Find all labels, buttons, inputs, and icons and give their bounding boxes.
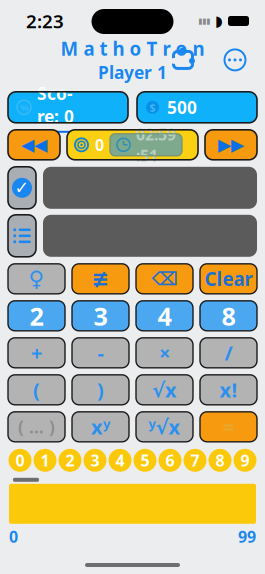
- button[interactable]: 7: [183, 449, 206, 472]
- button[interactable]: ( … ): [8, 412, 65, 442]
- staticText: -: [97, 339, 103, 366]
- staticText: Score: 0: [37, 82, 74, 128]
- button[interactable]: Previous: [8, 130, 60, 160]
- staticText: 2: [65, 450, 74, 471]
- staticText: 500: [167, 96, 197, 119]
- button[interactable]: xʸ: [72, 412, 129, 442]
- staticText: xʸ: [91, 413, 110, 440]
- button[interactable]: 6: [158, 449, 181, 472]
- staticText: ×: [159, 339, 170, 366]
- staticText: 2: [29, 299, 43, 333]
- staticText: x!: [219, 376, 237, 403]
- button[interactable]: History: [8, 215, 36, 257]
- button[interactable]: 2: [8, 301, 65, 331]
- staticText: ): [97, 376, 104, 403]
- button[interactable]: x!: [200, 375, 257, 405]
- staticText: 5: [140, 450, 149, 471]
- staticText: 99: [238, 526, 256, 547]
- button[interactable]: (: [8, 375, 65, 405]
- staticText: √x: [152, 376, 177, 403]
- button[interactable]: Puzzle: [171, 48, 195, 72]
- button[interactable]: -: [72, 338, 129, 368]
- staticText: %: [20, 101, 28, 113]
- staticText: ▶▶: [218, 135, 244, 155]
- button[interactable]: √x: [136, 375, 193, 405]
- staticText: ≢: [91, 267, 109, 291]
- button[interactable]: Hint: [8, 264, 65, 294]
- button[interactable]: 3: [83, 449, 106, 472]
- button[interactable]: 8: [208, 449, 231, 472]
- staticText: =: [223, 413, 234, 440]
- staticText: $: [149, 100, 155, 114]
- button[interactable]: 8: [200, 301, 257, 331]
- button[interactable]: 9: [233, 449, 256, 472]
- staticText: 7: [190, 450, 199, 471]
- staticText: ♀: [28, 267, 44, 291]
- staticText: 0: [15, 450, 24, 471]
- button[interactable]: ʸ√x: [136, 412, 193, 442]
- staticText: 0: [95, 134, 104, 155]
- staticText: ⌫: [151, 268, 177, 289]
- staticText: ✓: [14, 178, 29, 198]
- button[interactable]: More: [223, 48, 247, 72]
- button[interactable]: Clear: [200, 264, 257, 294]
- staticText: 9: [240, 450, 249, 471]
- button[interactable]: Delete: [136, 264, 193, 294]
- staticText: 8: [215, 450, 224, 471]
- staticText: M a t h o T r o n: [60, 36, 204, 61]
- button[interactable]: 3: [72, 301, 129, 331]
- button[interactable]: =: [200, 412, 257, 442]
- staticText: 0: [9, 526, 18, 547]
- staticText: 8: [221, 299, 235, 333]
- button[interactable]: ×: [136, 338, 193, 368]
- button[interactable]: /: [200, 338, 257, 368]
- button[interactable]: $: [137, 92, 257, 123]
- button[interactable]: Next: [205, 130, 257, 160]
- button[interactable]: 2: [58, 449, 81, 472]
- staticText: 4: [115, 450, 124, 471]
- button[interactable]: %: [8, 92, 128, 123]
- button[interactable]: Toggle: [72, 264, 129, 294]
- staticText: 4: [157, 299, 171, 333]
- staticText: ( … ): [18, 415, 55, 438]
- staticText: Clear: [204, 266, 252, 291]
- staticText: ʸ√x: [148, 413, 180, 440]
- staticText: 02:59:51: [136, 124, 176, 166]
- staticText: ◗: [215, 13, 223, 29]
- staticText: 2:23: [26, 9, 64, 33]
- button[interactable]: +: [8, 338, 65, 368]
- button[interactable]: ): [72, 375, 129, 405]
- staticText: (: [33, 376, 40, 403]
- button[interactable]: 0: [8, 449, 31, 472]
- staticText: /: [224, 339, 232, 366]
- staticText: 1: [40, 450, 49, 471]
- staticText: ▮▮▮: [198, 16, 210, 26]
- staticText: 3: [93, 299, 107, 333]
- staticText: 6: [165, 450, 174, 471]
- staticText: Player 1: [98, 61, 167, 84]
- button[interactable]: 1: [33, 449, 56, 472]
- staticText: ◀◀: [21, 135, 47, 155]
- button[interactable]: 5: [133, 449, 156, 472]
- button[interactable]: 4: [108, 449, 131, 472]
- staticText: +: [31, 339, 42, 366]
- button[interactable]: 4: [136, 301, 193, 331]
- button[interactable]: Check answer: [8, 167, 36, 209]
- staticText: 3: [90, 450, 99, 471]
